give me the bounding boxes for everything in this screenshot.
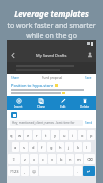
staticText: Share	[11, 76, 20, 80]
staticText: c	[42, 157, 44, 162]
button[interactable]: q	[8, 130, 15, 140]
staticText: My Saved Drafts	[36, 53, 67, 58]
staticText: Leverage templates	[14, 8, 89, 19]
staticText: Fund proposal	[42, 76, 63, 80]
staticText: ⌫	[87, 157, 93, 162]
staticText: w	[18, 133, 22, 138]
button[interactable]: k	[74, 142, 82, 152]
button[interactable]: e	[24, 130, 32, 140]
button[interactable]: Clone	[30, 96, 52, 110]
button[interactable]: b	[57, 154, 65, 164]
staticText: Edit	[60, 105, 66, 109]
staticText: d	[32, 145, 35, 150]
button[interactable]: ⇧	[8, 154, 20, 164]
button[interactable]: Back	[7, 49, 19, 61]
staticText: Insert	[14, 105, 23, 109]
button[interactable]: ?123	[8, 166, 20, 176]
staticText: h	[59, 145, 62, 150]
button[interactable]: j	[65, 142, 73, 152]
button[interactable]: ,	[21, 166, 29, 176]
staticText: .	[77, 169, 79, 174]
staticText: e	[27, 133, 30, 138]
staticText: s	[23, 145, 25, 150]
button[interactable]: y	[51, 130, 59, 140]
staticText: ?123	[10, 169, 19, 174]
button[interactable]: h	[56, 142, 64, 152]
staticText: k	[77, 145, 80, 150]
staticText: f	[41, 145, 43, 150]
button[interactable]: Insert	[7, 96, 30, 110]
button[interactable]: a	[12, 142, 19, 152]
staticText: b	[60, 157, 63, 162]
button[interactable]: ⌫	[84, 154, 95, 164]
staticText: q	[10, 133, 13, 138]
staticText: a	[14, 145, 17, 150]
staticText: n	[69, 157, 72, 162]
button[interactable]: s	[20, 142, 28, 152]
button[interactable]: ☺	[30, 166, 38, 176]
staticText: u	[63, 133, 66, 138]
button[interactable]: Share	[10, 76, 21, 80]
staticText: v	[51, 157, 54, 162]
staticText: ,	[24, 169, 26, 174]
staticText: while on the go	[26, 31, 77, 41]
button[interactable]: Edit	[52, 96, 74, 110]
button[interactable]: Hey, mentioned_client_names - best time …	[10, 120, 83, 126]
staticText: Save	[85, 76, 92, 80]
button[interactable]: z	[21, 154, 29, 164]
staticText: ⇧	[12, 157, 16, 162]
staticText: Delete	[80, 105, 90, 109]
button[interactable]: o	[78, 130, 86, 140]
staticText: l	[86, 145, 88, 150]
button[interactable]: w	[16, 130, 23, 140]
staticText: r	[36, 133, 38, 138]
staticText: Position to hypo-store	[11, 83, 54, 88]
button[interactable]: p	[87, 130, 95, 140]
button[interactable]: r	[33, 130, 41, 140]
button[interactable]: d	[29, 142, 37, 152]
staticText: ☺	[32, 169, 37, 174]
button[interactable]: l	[83, 142, 91, 152]
button[interactable]: n	[66, 154, 74, 164]
button[interactable]: Enter	[83, 166, 95, 176]
staticText: x	[33, 157, 36, 162]
button[interactable]: .	[74, 166, 82, 176]
button[interactable]: x	[30, 154, 38, 164]
staticText: i	[72, 133, 74, 138]
button[interactable]: g	[47, 142, 55, 152]
button[interactable]: t	[42, 130, 50, 140]
staticText: t	[45, 133, 47, 138]
button[interactable]: c	[39, 154, 47, 164]
staticText: to work faster and smarter	[7, 21, 96, 31]
button[interactable]: i	[69, 130, 77, 140]
staticText: ↵	[87, 169, 91, 174]
staticText: Send	[85, 121, 93, 125]
staticText: y	[54, 133, 57, 138]
staticText: p	[90, 133, 93, 138]
staticText: Hey, mentioned_client_names - best time …	[12, 121, 81, 125]
staticText: j	[68, 145, 70, 150]
staticText: z	[24, 157, 26, 162]
staticText: o	[81, 133, 84, 138]
staticText: m	[77, 157, 81, 162]
button[interactable]: v	[48, 154, 56, 164]
staticText: g	[50, 145, 53, 150]
button[interactable]: Send	[85, 121, 93, 125]
button[interactable]: m	[75, 154, 83, 164]
button[interactable]: u	[60, 130, 68, 140]
staticText: Clone	[37, 105, 46, 109]
button[interactable]: Delete	[74, 96, 96, 110]
button[interactable]: Account	[84, 49, 96, 61]
button[interactable]: f	[38, 142, 46, 152]
button[interactable]: App icon	[11, 112, 17, 118]
button[interactable]: Save	[84, 76, 93, 80]
